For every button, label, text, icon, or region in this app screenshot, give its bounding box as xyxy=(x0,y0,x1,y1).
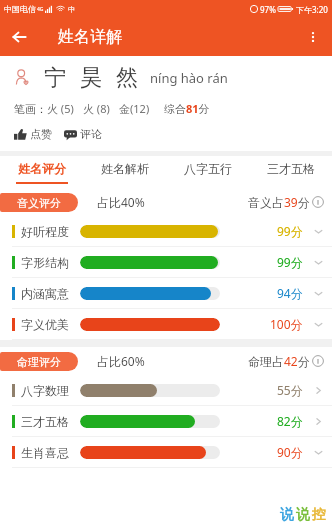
button[interactable]: 姓名解析 xyxy=(83,156,166,188)
button[interactable]: 评论 xyxy=(64,125,102,143)
staticText: 综合81分 xyxy=(164,101,210,116)
button[interactable]: 点赞 xyxy=(14,125,52,143)
button[interactable]: 音义评分 xyxy=(0,193,78,212)
staticText: 下午3:20 xyxy=(296,4,328,15)
button[interactable]: 内涵寓意 xyxy=(0,278,332,309)
staticText: 说 xyxy=(296,506,310,524)
staticText: 控 xyxy=(312,506,326,524)
staticText: 姓名评分 xyxy=(18,161,66,176)
staticText: 55分 xyxy=(277,382,303,398)
staticText: 八字五行 xyxy=(184,161,232,176)
button[interactable]: More options xyxy=(294,18,332,56)
staticText: 金(12) xyxy=(119,101,150,116)
staticText: 占比40% xyxy=(97,194,145,210)
button[interactable]: 八字五行 xyxy=(166,156,249,188)
staticText: 99分 xyxy=(277,223,303,239)
staticText: 姓名解析 xyxy=(101,161,149,176)
staticText: 占比60% xyxy=(97,353,145,369)
staticText: 100分 xyxy=(270,316,303,332)
button[interactable]: 字义优美 xyxy=(0,309,332,340)
staticText: 命理占42分 xyxy=(248,353,310,369)
staticText: 中 xyxy=(68,5,75,14)
staticText: 笔画： xyxy=(14,102,47,116)
button[interactable]: 生肖喜忌 xyxy=(0,437,332,468)
button[interactable]: 好听程度 xyxy=(0,216,332,247)
staticText: 好听程度 xyxy=(21,224,69,239)
staticText: 中国电信 xyxy=(4,4,36,14)
staticText: 字义优美 xyxy=(21,317,69,332)
staticText: 火 (8) xyxy=(83,101,110,116)
staticText: 音义评分 xyxy=(17,196,61,210)
button[interactable]: 八字数理 xyxy=(0,375,332,406)
button[interactable]: 姓名评分 xyxy=(0,156,83,188)
staticText: níng hào rán xyxy=(150,69,228,87)
button[interactable]: 三才五格 xyxy=(249,156,332,188)
button[interactable]: Back xyxy=(0,18,38,56)
staticText: 音义占39分 xyxy=(248,194,310,210)
staticText: 姓名详解 xyxy=(58,27,122,47)
staticText: 火 (5) xyxy=(47,101,74,116)
button[interactable]: Info xyxy=(312,196,324,208)
staticText: 点赞 xyxy=(30,127,52,141)
button[interactable]: 三才五格 xyxy=(0,406,332,437)
staticText: 然 xyxy=(116,64,138,92)
staticText: 昊 xyxy=(80,64,102,92)
staticText: 4G xyxy=(37,6,44,13)
staticText: 评论 xyxy=(80,127,102,141)
staticText: 宁 xyxy=(44,64,66,92)
staticText: 生肖喜忌 xyxy=(21,445,69,460)
staticText: 90分 xyxy=(277,444,303,460)
button[interactable]: 字形结构 xyxy=(0,247,332,278)
staticText: 三才五格 xyxy=(21,414,69,429)
staticText: 内涵寓意 xyxy=(21,286,69,301)
staticText: 82分 xyxy=(277,413,303,429)
staticText: 命理评分 xyxy=(17,355,61,369)
staticText: 99分 xyxy=(277,254,303,270)
staticText: 说 xyxy=(280,506,294,524)
button[interactable]: Info xyxy=(312,355,324,367)
staticText: 97% xyxy=(260,4,276,15)
staticText: 八字数理 xyxy=(21,383,69,398)
staticText: 94分 xyxy=(277,285,303,301)
staticText: 三才五格 xyxy=(267,161,315,176)
button[interactable]: 命理评分 xyxy=(0,352,78,371)
staticText: 字形结构 xyxy=(21,255,69,270)
